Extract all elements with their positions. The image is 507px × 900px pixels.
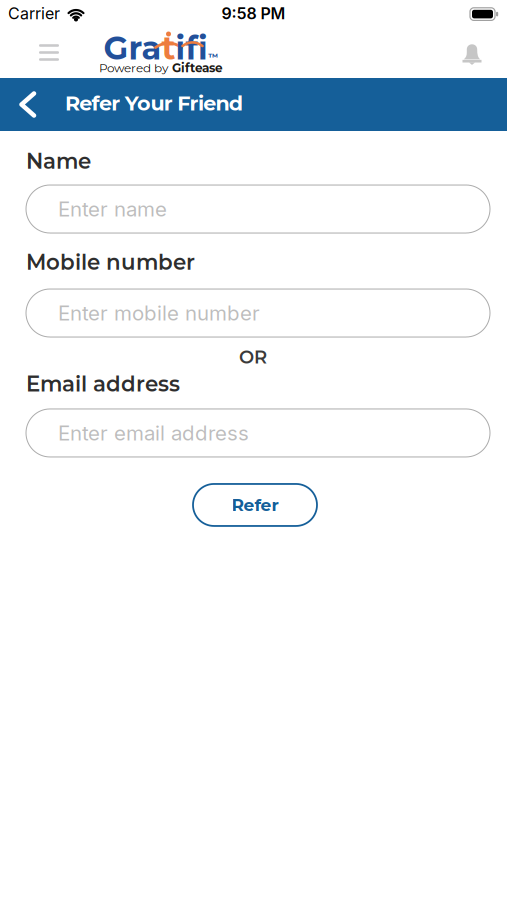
button[interactable]: Notifications bbox=[459, 39, 485, 65]
staticText: Carrier bbox=[8, 4, 60, 23]
button[interactable]: Back bbox=[0, 78, 65, 130]
staticText: Gra bbox=[103, 28, 161, 67]
button[interactable]: Refer bbox=[193, 484, 317, 526]
button[interactable]: Enter email address bbox=[26, 409, 490, 457]
button[interactable]: Menu bbox=[37, 39, 61, 66]
staticText: Enter email address bbox=[58, 420, 249, 445]
staticText: ifi bbox=[175, 28, 207, 67]
staticText: Refer bbox=[231, 495, 278, 515]
staticText: t bbox=[161, 28, 175, 67]
staticText: Enter mobile number bbox=[58, 301, 260, 325]
staticText: 9:58 PM bbox=[221, 4, 285, 23]
staticText: Mobile number bbox=[26, 249, 195, 275]
staticText: ™ bbox=[208, 51, 218, 63]
button[interactable]: Enter name bbox=[26, 185, 490, 233]
staticText: Email address bbox=[26, 371, 180, 397]
staticText: OR bbox=[239, 346, 267, 368]
staticText: Name bbox=[26, 148, 91, 174]
button[interactable]: Enter mobile number bbox=[26, 289, 490, 337]
staticText: Enter name bbox=[58, 197, 167, 221]
staticText: Powered by Giftease bbox=[99, 61, 223, 75]
staticText: Refer Your Friend bbox=[65, 90, 243, 116]
